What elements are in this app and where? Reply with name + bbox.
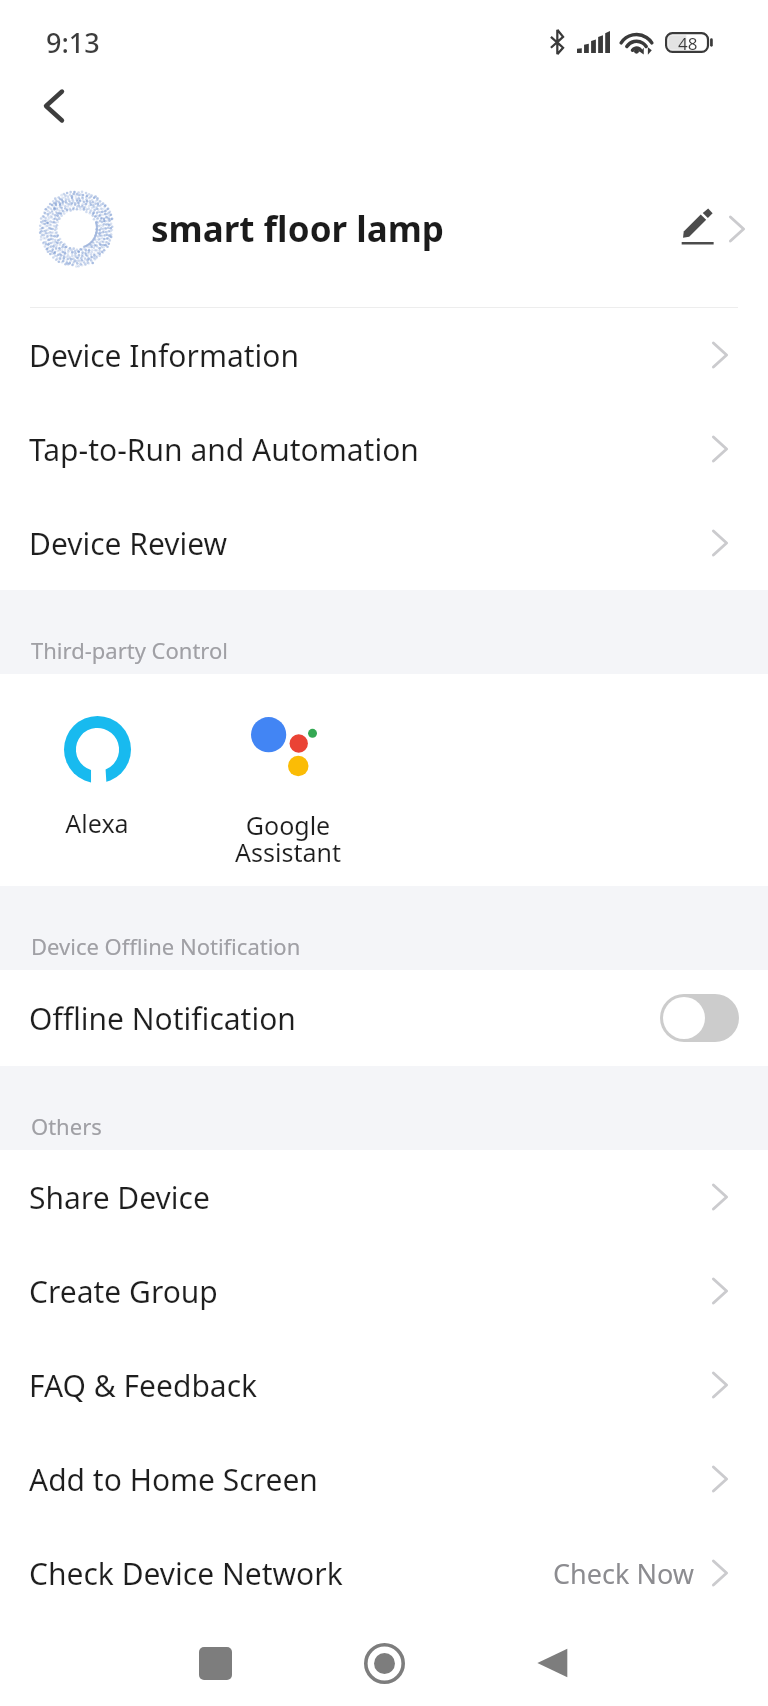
staticText: Add to Home Screen <box>29 1459 318 1500</box>
button[interactable]: Back <box>520 1631 584 1695</box>
button[interactable]: Device Review <box>0 496 768 590</box>
staticText: Share Device <box>29 1177 210 1218</box>
button[interactable]: Create Group <box>0 1244 768 1338</box>
staticText: Google Assistant <box>235 808 341 870</box>
staticText: Offline Notification <box>29 998 296 1039</box>
button[interactable]: Back <box>26 84 82 128</box>
staticText: Others <box>31 1111 102 1141</box>
button[interactable]: FAQ & Feedback <box>0 1338 768 1432</box>
button[interactable]: Recents <box>183 1631 247 1695</box>
staticText: Third-party Control <box>31 635 228 665</box>
staticText: Device Offline Notification <box>31 931 301 961</box>
staticText: Device Information <box>29 335 300 376</box>
button[interactable]: Google Assistant <box>222 717 354 870</box>
button[interactable]: Tap-to-Run and Automation <box>0 402 768 496</box>
button[interactable]: Check Device Network <box>0 1526 768 1620</box>
staticText: 9:13 <box>46 24 100 61</box>
staticText: 48 <box>678 32 698 53</box>
staticText: Tap-to-Run and Automation <box>29 429 419 470</box>
staticText: FAQ & Feedback <box>29 1365 258 1406</box>
button[interactable]: Edit name <box>676 207 720 251</box>
button[interactable]: Device Information <box>0 308 768 402</box>
button[interactable]: Alexa <box>40 716 154 840</box>
staticText: Check Device Network <box>29 1553 343 1594</box>
staticText: Device Review <box>29 523 228 564</box>
staticText: smart floor lamp <box>151 205 444 253</box>
button[interactable]: Home <box>352 1631 416 1695</box>
button[interactable]: smart floor lamp <box>0 128 768 307</box>
staticText: Alexa <box>65 806 129 840</box>
button[interactable]: Add to Home Screen <box>0 1432 768 1526</box>
staticText: Create Group <box>29 1271 218 1312</box>
staticText: Check Now <box>553 1555 694 1592</box>
button[interactable]: Share Device <box>0 1150 768 1244</box>
button[interactable]: Offline Notification toggle <box>660 994 739 1042</box>
button[interactable]: Offline Notification <box>0 970 768 1066</box>
